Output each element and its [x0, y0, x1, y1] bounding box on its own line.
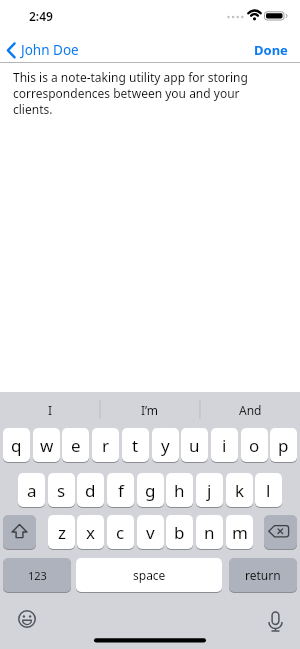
staticText: t: [132, 434, 139, 457]
button[interactable]: p: [270, 428, 297, 462]
button[interactable]: [11, 603, 43, 635]
staticText: I’m: [141, 402, 159, 418]
staticText: e: [71, 434, 81, 457]
button[interactable]: q: [3, 428, 30, 462]
button[interactable]: I: [0, 392, 100, 427]
staticText: i: [222, 434, 227, 457]
button[interactable]: t: [122, 428, 149, 462]
button[interactable]: g: [137, 473, 164, 507]
staticText: z: [58, 521, 66, 544]
staticText: k: [235, 479, 245, 502]
button[interactable]: John Doe: [0, 30, 120, 62]
button[interactable]: u: [181, 428, 208, 462]
button[interactable]: i: [211, 428, 238, 462]
button[interactable]: j: [196, 473, 223, 507]
staticText: This is a note-taking utility app for st…: [13, 69, 248, 117]
staticText: return: [245, 567, 281, 583]
staticText: c: [116, 521, 125, 544]
staticText: g: [145, 479, 156, 502]
button[interactable]: e: [62, 428, 89, 462]
button[interactable]: c: [107, 515, 134, 549]
staticText: John Doe: [21, 41, 79, 59]
button[interactable]: m: [226, 515, 253, 549]
button[interactable]: h: [166, 473, 193, 507]
button[interactable]: And: [200, 392, 300, 427]
staticText: a: [27, 479, 37, 502]
staticText: f: [118, 479, 124, 502]
button[interactable]: k: [226, 473, 253, 507]
staticText: h: [174, 479, 185, 502]
staticText: m: [232, 521, 248, 544]
staticText: l: [266, 479, 271, 502]
staticText: And: [239, 402, 262, 418]
staticText: o: [249, 434, 260, 457]
staticText: x: [86, 521, 95, 544]
staticText: Done: [254, 41, 288, 59]
button[interactable]: n: [196, 515, 223, 549]
button[interactable]: Done: [245, 30, 300, 62]
button[interactable]: [259, 603, 291, 635]
staticText: q: [11, 434, 22, 457]
staticText: 2:49: [29, 8, 53, 24]
button[interactable]: b: [166, 515, 193, 549]
button[interactable]: [264, 515, 297, 549]
button[interactable]: space: [76, 558, 222, 592]
button[interactable]: v: [137, 515, 164, 549]
staticText: 123: [28, 568, 47, 583]
staticText: b: [174, 521, 185, 544]
button[interactable]: a: [18, 473, 45, 507]
button[interactable]: d: [77, 473, 104, 507]
button[interactable]: o: [241, 428, 268, 462]
button[interactable]: f: [107, 473, 134, 507]
staticText: s: [57, 479, 66, 502]
staticText: r: [102, 434, 110, 457]
button[interactable]: x: [77, 515, 104, 549]
staticText: y: [161, 434, 170, 457]
staticText: space: [133, 567, 166, 583]
staticText: n: [204, 521, 215, 544]
button[interactable]: z: [48, 515, 75, 549]
button[interactable]: I’m: [100, 392, 200, 427]
staticText: w: [40, 434, 54, 457]
staticText: p: [278, 434, 289, 457]
staticText: v: [146, 521, 155, 544]
staticText: u: [189, 434, 200, 457]
button[interactable]: l: [255, 473, 282, 507]
button[interactable]: w: [33, 428, 60, 462]
button[interactable]: [3, 515, 36, 549]
staticText: j: [207, 479, 212, 502]
button[interactable]: r: [92, 428, 119, 462]
button[interactable]: y: [152, 428, 179, 462]
button[interactable]: 123: [3, 558, 71, 592]
staticText: I: [48, 402, 53, 418]
button[interactable]: s: [48, 473, 75, 507]
button[interactable]: return: [229, 558, 297, 592]
staticText: d: [85, 479, 96, 502]
